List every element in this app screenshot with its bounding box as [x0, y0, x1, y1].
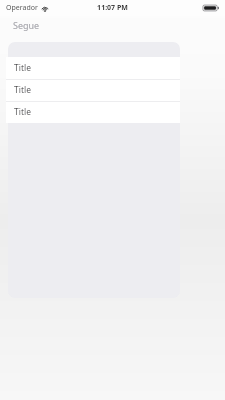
staticText: Title [14, 106, 31, 118]
staticText: 11:07 PM [97, 3, 128, 13]
other: Wi-Fi signal [41, 5, 49, 12]
staticText: Title [14, 84, 31, 96]
other: Battery full [203, 4, 219, 12]
button[interactable]: Title [6, 79, 180, 101]
button[interactable]: Title [6, 101, 180, 123]
staticText: Title [14, 62, 31, 74]
button[interactable]: Title [6, 57, 180, 79]
staticText: Operador [6, 3, 38, 13]
staticText: Segue [13, 19, 40, 31]
